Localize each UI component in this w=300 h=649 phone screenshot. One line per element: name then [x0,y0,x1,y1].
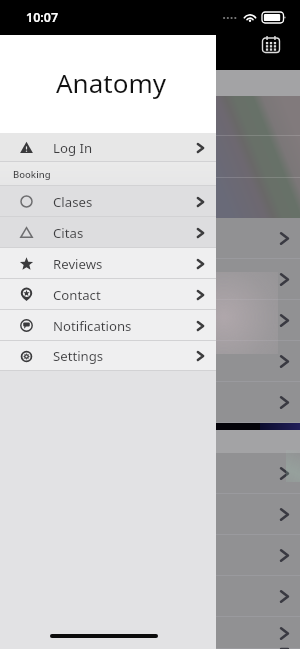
staticText: Anatomy [56,65,166,100]
staticText: Citas [53,224,84,242]
button[interactable]: Log In [0,133,216,162]
staticText: Notifications [53,317,132,335]
staticText: Booking [13,168,51,181]
staticText: Reviews [53,255,103,273]
button[interactable]: Notifications [0,310,216,341]
staticText: 10:07 [26,9,59,26]
staticText: Contact [53,286,101,304]
button[interactable]: Reviews [0,248,216,279]
staticText: Clases [53,193,93,211]
button[interactable]: Calendar [259,32,283,56]
button[interactable]: Contact [0,279,216,310]
staticText: Log In [53,139,93,157]
button[interactable]: Settings [0,341,216,371]
button[interactable]: Citas [0,217,216,248]
button[interactable]: Clases [0,186,216,217]
staticText: Settings [53,347,104,365]
